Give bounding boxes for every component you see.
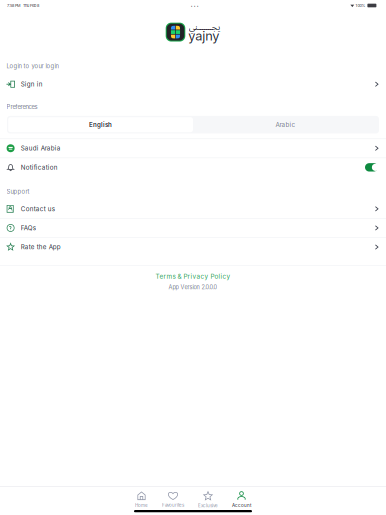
button[interactable]: Notification <box>0 158 386 176</box>
staticText: Favourites <box>162 502 184 508</box>
staticText: 100% <box>356 3 366 8</box>
staticText: Thu Feb 8 <box>23 3 39 8</box>
button[interactable]: Exclusive <box>198 491 218 508</box>
staticText: Notification <box>21 164 58 171</box>
staticText: Saudi Arabia <box>21 144 61 152</box>
staticText: Terms & Privacy Policy <box>155 272 230 280</box>
staticText: FAQs <box>21 224 36 232</box>
button[interactable]: Arabic <box>193 117 378 132</box>
staticText: Rate the App <box>21 243 61 251</box>
button[interactable]: Home <box>135 492 148 508</box>
button[interactable]: Favourites <box>162 492 184 508</box>
staticText: Account <box>232 502 251 508</box>
staticText: Preferences <box>7 103 38 110</box>
staticText: App Version 2.0.0.0 <box>168 284 217 290</box>
staticText: yajny <box>188 28 219 44</box>
button[interactable]: Account <box>232 492 251 508</box>
button[interactable]: Rate the App <box>0 238 386 256</box>
staticText: Support <box>7 188 30 195</box>
staticText: Home <box>135 502 148 508</box>
staticText: Login to your login <box>7 63 59 70</box>
staticText: Arabic <box>275 121 295 128</box>
button[interactable]: Sign in <box>0 77 386 91</box>
button[interactable]: Terms & Privacy Policy <box>155 272 230 280</box>
staticText: Contact us <box>21 205 55 213</box>
staticText: English <box>89 121 112 128</box>
staticText: Sign in <box>21 80 43 88</box>
staticText: Exclusive <box>198 503 218 508</box>
button[interactable]: Saudi Arabia <box>0 139 386 157</box>
staticText: 7:58 PM <box>7 3 20 8</box>
staticText: • • • <box>191 4 199 7</box>
button[interactable]: Contact us <box>0 200 386 218</box>
button[interactable]: English <box>8 117 193 132</box>
staticText: يجـــــــني <box>188 18 220 37</box>
button[interactable]: FAQs <box>0 219 386 237</box>
